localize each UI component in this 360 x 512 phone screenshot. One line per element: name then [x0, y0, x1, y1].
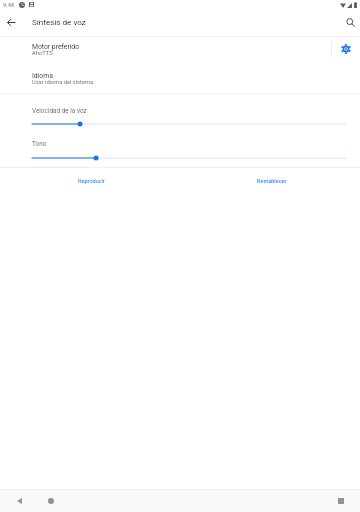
button[interactable]: Back — [11, 493, 27, 509]
button[interactable]: Recent apps — [333, 493, 349, 509]
button[interactable]: Motor preferido — [0, 36, 331, 65]
staticText: AhoTTS — [32, 50, 53, 57]
staticText: Síntesis de voz — [32, 17, 86, 26]
button[interactable]: Back — [2, 13, 20, 31]
button[interactable]: Restablecer — [182, 171, 360, 191]
staticText: Reproducir — [78, 178, 106, 185]
staticText: Usar idioma del sistema — [32, 79, 93, 86]
staticText: Velocidad de la voz — [32, 107, 87, 115]
staticText: 9:48 — [3, 2, 15, 9]
button[interactable]: Reproducir — [2, 171, 182, 191]
button[interactable] — [32, 120, 346, 128]
staticText: Idioma — [32, 72, 53, 80]
staticText: Tono — [32, 140, 47, 148]
button[interactable] — [32, 154, 346, 162]
button[interactable]: Engine settings — [332, 34, 360, 63]
button[interactable]: Search — [341, 13, 359, 31]
staticText: Restablecer — [257, 178, 287, 185]
button[interactable]: Idioma — [0, 66, 360, 92]
staticText: Motor preferido — [32, 43, 80, 51]
button[interactable]: Home — [43, 493, 59, 509]
